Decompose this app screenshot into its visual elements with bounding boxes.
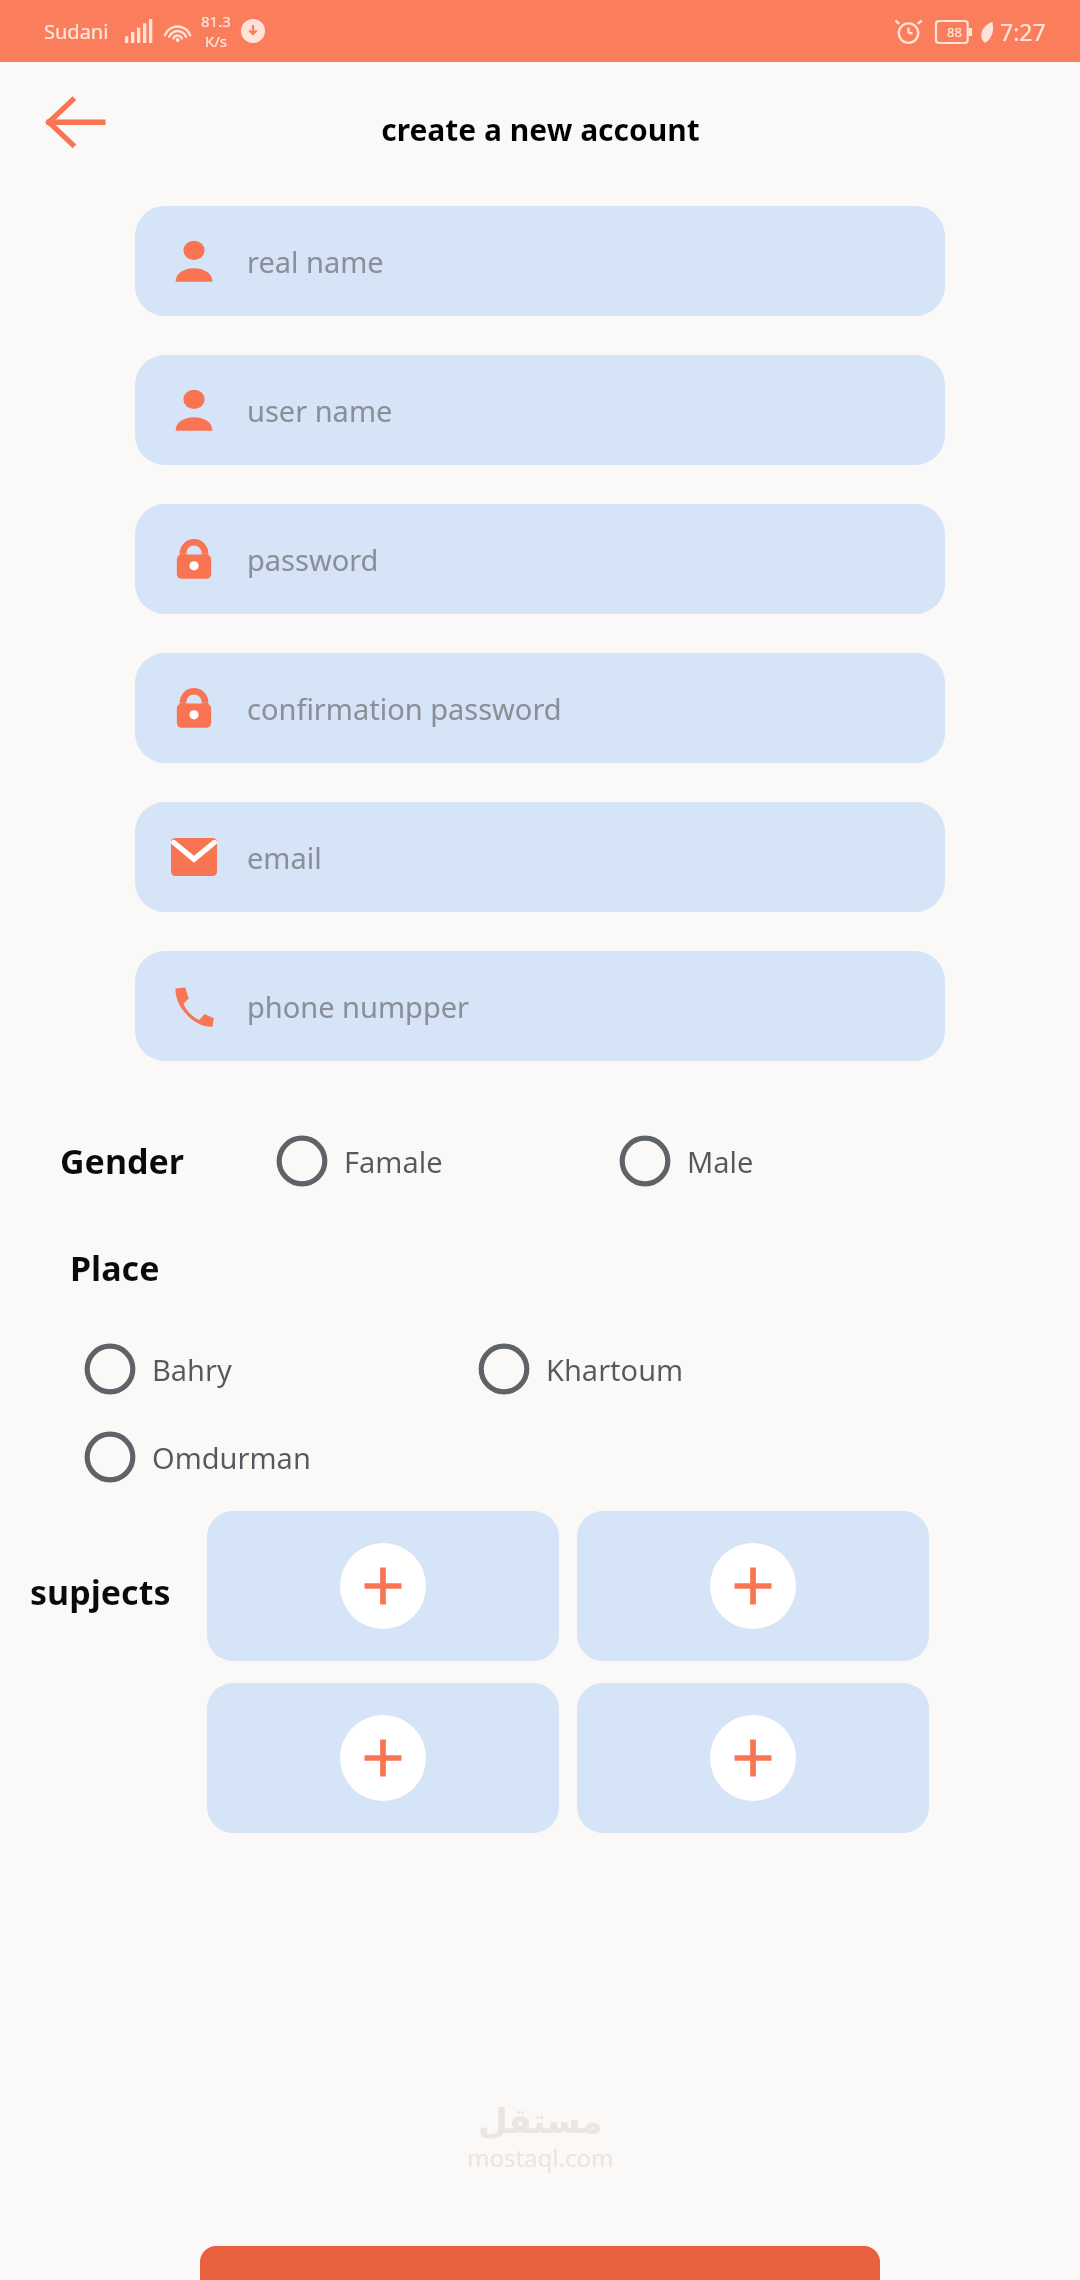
button[interactable]: real name: [135, 206, 945, 316]
button[interactable]: Sign up: [200, 2246, 880, 2280]
button[interactable]: Add subject: [577, 1683, 929, 1833]
staticText: phone numpper: [247, 987, 470, 1026]
staticText: supjects: [30, 1569, 171, 1615]
button[interactable]: user name: [135, 355, 945, 465]
button[interactable]: Add subject: [577, 1511, 929, 1661]
staticText: Omdurman: [152, 1438, 311, 1477]
staticText: Bahry: [152, 1350, 232, 1389]
button[interactable]: Khartoum: [478, 1343, 684, 1395]
staticText: Khartoum: [546, 1350, 684, 1389]
staticText: user name: [247, 391, 393, 430]
staticText: 81.3: [201, 11, 231, 31]
button[interactable]: Add subject: [207, 1511, 559, 1661]
staticText: Male: [687, 1142, 754, 1181]
button[interactable]: Famale: [276, 1135, 443, 1187]
staticText: email: [247, 838, 322, 877]
staticText: 7:27: [1000, 16, 1046, 47]
staticText: mostaql.com: [467, 2141, 614, 2174]
staticText: Place: [70, 1245, 160, 1291]
button[interactable]: password: [135, 504, 945, 614]
button[interactable]: phone numpper: [135, 951, 945, 1061]
staticText: real name: [247, 242, 384, 281]
button[interactable]: Add subject: [207, 1683, 559, 1833]
button[interactable]: Back: [36, 82, 114, 160]
button[interactable]: email: [135, 802, 945, 912]
button[interactable]: confirmation password: [135, 653, 945, 763]
staticText: create a new account: [381, 109, 700, 150]
button[interactable]: Omdurman: [84, 1431, 311, 1483]
staticText: Gender: [60, 1138, 184, 1184]
staticText: confirmation password: [247, 689, 562, 728]
staticText: 88: [947, 23, 962, 41]
staticText: password: [247, 540, 379, 579]
staticText: مستقل: [478, 2101, 603, 2141]
staticText: K/s: [205, 31, 228, 51]
staticText: Famale: [344, 1142, 443, 1181]
button[interactable]: Male: [619, 1135, 754, 1187]
staticText: Sudani: [44, 18, 109, 45]
button[interactable]: Bahry: [84, 1343, 232, 1395]
